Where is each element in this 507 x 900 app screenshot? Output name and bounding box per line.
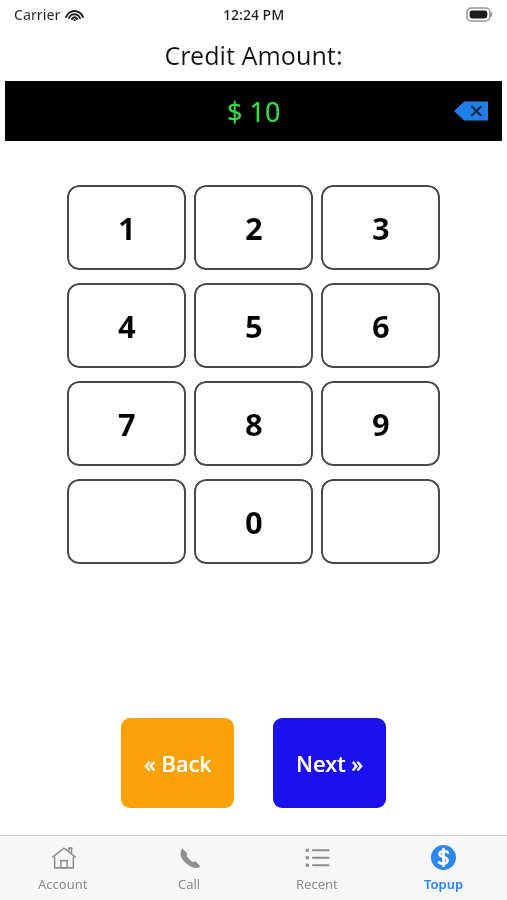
button[interactable]: 3 (321, 185, 440, 270)
staticText: 6 (372, 305, 390, 347)
button[interactable]: 8 (194, 381, 313, 466)
staticText: Carrier (14, 5, 61, 24)
staticText: Recent (296, 875, 338, 893)
staticText: 3 (372, 207, 390, 249)
button[interactable]: « Back (121, 718, 234, 808)
staticText: 2 (245, 207, 263, 249)
staticText: Account (38, 875, 88, 893)
staticText: 0 (245, 501, 263, 543)
staticText: 1 (118, 207, 136, 249)
staticText: 5 (245, 305, 263, 347)
button[interactable]: 7 (67, 381, 186, 466)
button[interactable]: 1 (67, 185, 186, 270)
button[interactable]: Backspace (454, 99, 488, 123)
button[interactable]: Recent (253, 836, 380, 900)
button[interactable]: 4 (67, 283, 186, 368)
staticText: 4 (118, 305, 136, 347)
staticText: Next » (296, 748, 364, 778)
staticText: 12:24 PM (223, 5, 285, 24)
staticText: 9 (372, 403, 390, 445)
staticText: Topup (424, 875, 464, 893)
button[interactable]: Account (0, 836, 126, 900)
staticText: Credit Amount: (164, 38, 343, 72)
button[interactable]: 6 (321, 283, 440, 368)
button[interactable]: Call (126, 836, 253, 900)
staticText: « Back (144, 748, 212, 778)
staticText: $ 10 (227, 93, 281, 130)
button[interactable]: Blank key (321, 479, 440, 564)
button[interactable]: Next » (273, 718, 386, 808)
staticText: 7 (118, 403, 136, 445)
staticText: 8 (245, 403, 263, 445)
button[interactable]: 9 (321, 381, 440, 466)
button[interactable]: Topup (380, 836, 507, 900)
button[interactable]: 2 (194, 185, 313, 270)
button[interactable]: 5 (194, 283, 313, 368)
button[interactable]: 0 (194, 479, 313, 564)
staticText: Call (178, 875, 201, 893)
button[interactable]: Blank key (67, 479, 186, 564)
